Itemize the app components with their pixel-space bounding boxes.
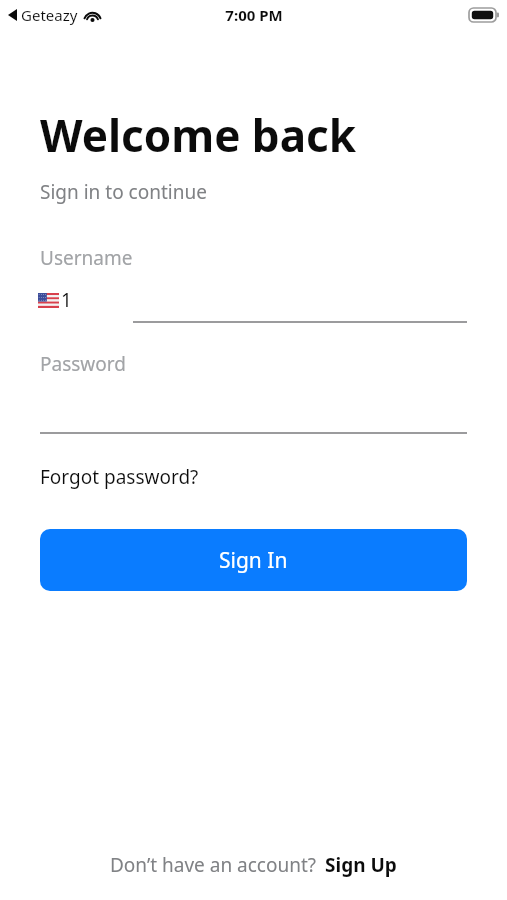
staticText: 7:00 PM bbox=[225, 5, 283, 25]
button[interactable]: Sign Up bbox=[325, 852, 397, 878]
button[interactable]: 1 bbox=[0, 287, 507, 323]
staticText: Forgot password? bbox=[40, 464, 199, 490]
staticText: Geteazy bbox=[21, 5, 78, 25]
button[interactable]: Sign In bbox=[40, 529, 467, 591]
staticText: Sign Up bbox=[325, 852, 397, 878]
staticText: Username bbox=[40, 245, 133, 271]
staticText: 1 bbox=[61, 287, 72, 313]
staticText: Welcome back bbox=[40, 105, 357, 165]
staticText: Sign in to continue bbox=[40, 179, 207, 205]
button[interactable]: Forgot password? bbox=[40, 464, 199, 490]
button[interactable]: Back to Geteazy bbox=[8, 5, 101, 25]
staticText: Sign In bbox=[219, 546, 288, 575]
button[interactable] bbox=[0, 422, 507, 434]
staticText: Password bbox=[40, 351, 126, 377]
staticText: Don’t have an account? bbox=[110, 852, 317, 878]
